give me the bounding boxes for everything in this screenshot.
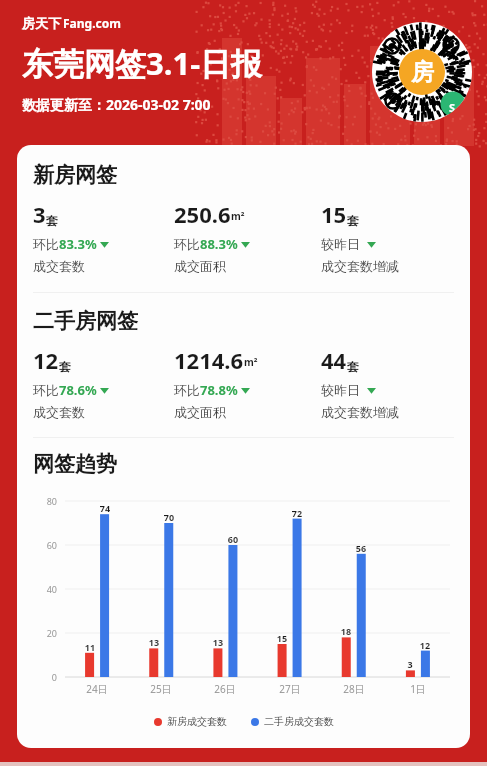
staticText: 环比 [33, 382, 59, 398]
staticText: 成交套数增减 [321, 404, 399, 420]
staticText: 74 [95, 502, 115, 514]
button[interactable]: 扫描二维码 [372, 22, 472, 122]
staticText: 13 [208, 636, 228, 648]
staticText: 成交面积 [174, 404, 226, 420]
button[interactable]: 1214.6 [174, 345, 321, 420]
staticText: 环比 [33, 236, 59, 252]
staticText: 较昨日 [321, 381, 364, 399]
staticText: 20 [35, 627, 57, 639]
staticText: 3 [33, 199, 46, 229]
staticText: Fang.com [63, 15, 121, 31]
staticText: 78.8% [200, 381, 238, 399]
staticText: 套 [347, 213, 359, 228]
staticText: 成交套数增减 [321, 258, 399, 274]
staticText: m² [231, 209, 245, 223]
button[interactable]: 3 [33, 199, 174, 274]
staticText: S [449, 100, 456, 115]
button[interactable]: 12 [33, 345, 174, 420]
staticText: 13 [144, 636, 164, 648]
staticText: 70 [159, 511, 179, 523]
staticText: 250.6 [174, 199, 231, 229]
button[interactable]: 44 [321, 345, 454, 420]
staticText: 60 [223, 533, 243, 545]
staticText: 0 [35, 671, 57, 683]
button[interactable]: 房天下 Fang.com [22, 15, 121, 31]
staticText: 套 [59, 359, 71, 374]
staticText: 72 [287, 507, 307, 519]
staticText: 套 [46, 213, 58, 228]
staticText: 1214.6 [174, 345, 244, 375]
staticText: 成交面积 [174, 258, 226, 274]
staticText: 新房成交套数 [167, 715, 227, 728]
staticText: 83.3% [59, 235, 97, 253]
staticText: 40 [35, 583, 57, 595]
staticText: 二手房网签 [33, 308, 138, 334]
staticText: 12 [33, 345, 59, 375]
staticText: 26日 [205, 682, 245, 696]
staticText: 成交套数 [33, 404, 85, 420]
staticText: 80 [35, 495, 57, 507]
button[interactable]: 15 [321, 199, 454, 274]
button[interactable]: 新房成交套数 [154, 715, 227, 728]
staticText: 数据更新至：2026-03-02 7:00 [22, 95, 211, 114]
staticText: 15 [321, 199, 347, 229]
staticText: m² [244, 355, 258, 369]
staticText: 44 [321, 345, 347, 375]
staticText: 24日 [77, 682, 117, 696]
staticText: 88.3% [200, 235, 238, 253]
staticText: 60 [35, 539, 57, 551]
staticText: 房 [411, 58, 434, 87]
button[interactable]: 250.6 [174, 199, 321, 274]
staticText: 网签趋势 [33, 451, 117, 477]
staticText: 12 [415, 639, 435, 651]
staticText: 房天下 [22, 15, 61, 31]
staticText: 18 [336, 625, 356, 637]
staticText: 56 [351, 542, 371, 554]
button[interactable]: 二手房成交套数 [251, 715, 334, 728]
staticText: 套 [347, 359, 359, 374]
staticText: 25日 [141, 682, 181, 696]
staticText: 1日 [398, 682, 438, 696]
staticText: 11 [80, 641, 100, 653]
staticText: 环比 [174, 236, 200, 252]
staticText: 28日 [334, 682, 374, 696]
staticText: 3 [400, 658, 420, 670]
staticText: 二手房成交套数 [264, 715, 334, 728]
staticText: 27日 [270, 682, 310, 696]
staticText: 15 [272, 632, 292, 644]
staticText: 较昨日 [321, 235, 364, 253]
staticText: 78.6% [59, 381, 97, 399]
staticText: 成交套数 [33, 258, 85, 274]
staticText: 新房网签 [33, 162, 117, 188]
staticText: 环比 [174, 382, 200, 398]
staticText: 东莞网签3.1-日报 [22, 42, 263, 84]
